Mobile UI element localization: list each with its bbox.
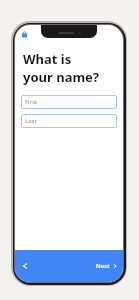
button[interactable]: Next: [94, 259, 120, 273]
staticText: What is: [23, 50, 72, 68]
staticText: First: [25, 98, 38, 106]
staticText: your name?: [23, 68, 100, 86]
staticText: Next: [96, 262, 110, 270]
other: App icon: [21, 31, 28, 38]
staticText: Last: [25, 117, 37, 125]
button[interactable]: First: [21, 95, 117, 109]
button[interactable]: Last: [21, 114, 117, 128]
button[interactable]: Back: [18, 259, 32, 273]
